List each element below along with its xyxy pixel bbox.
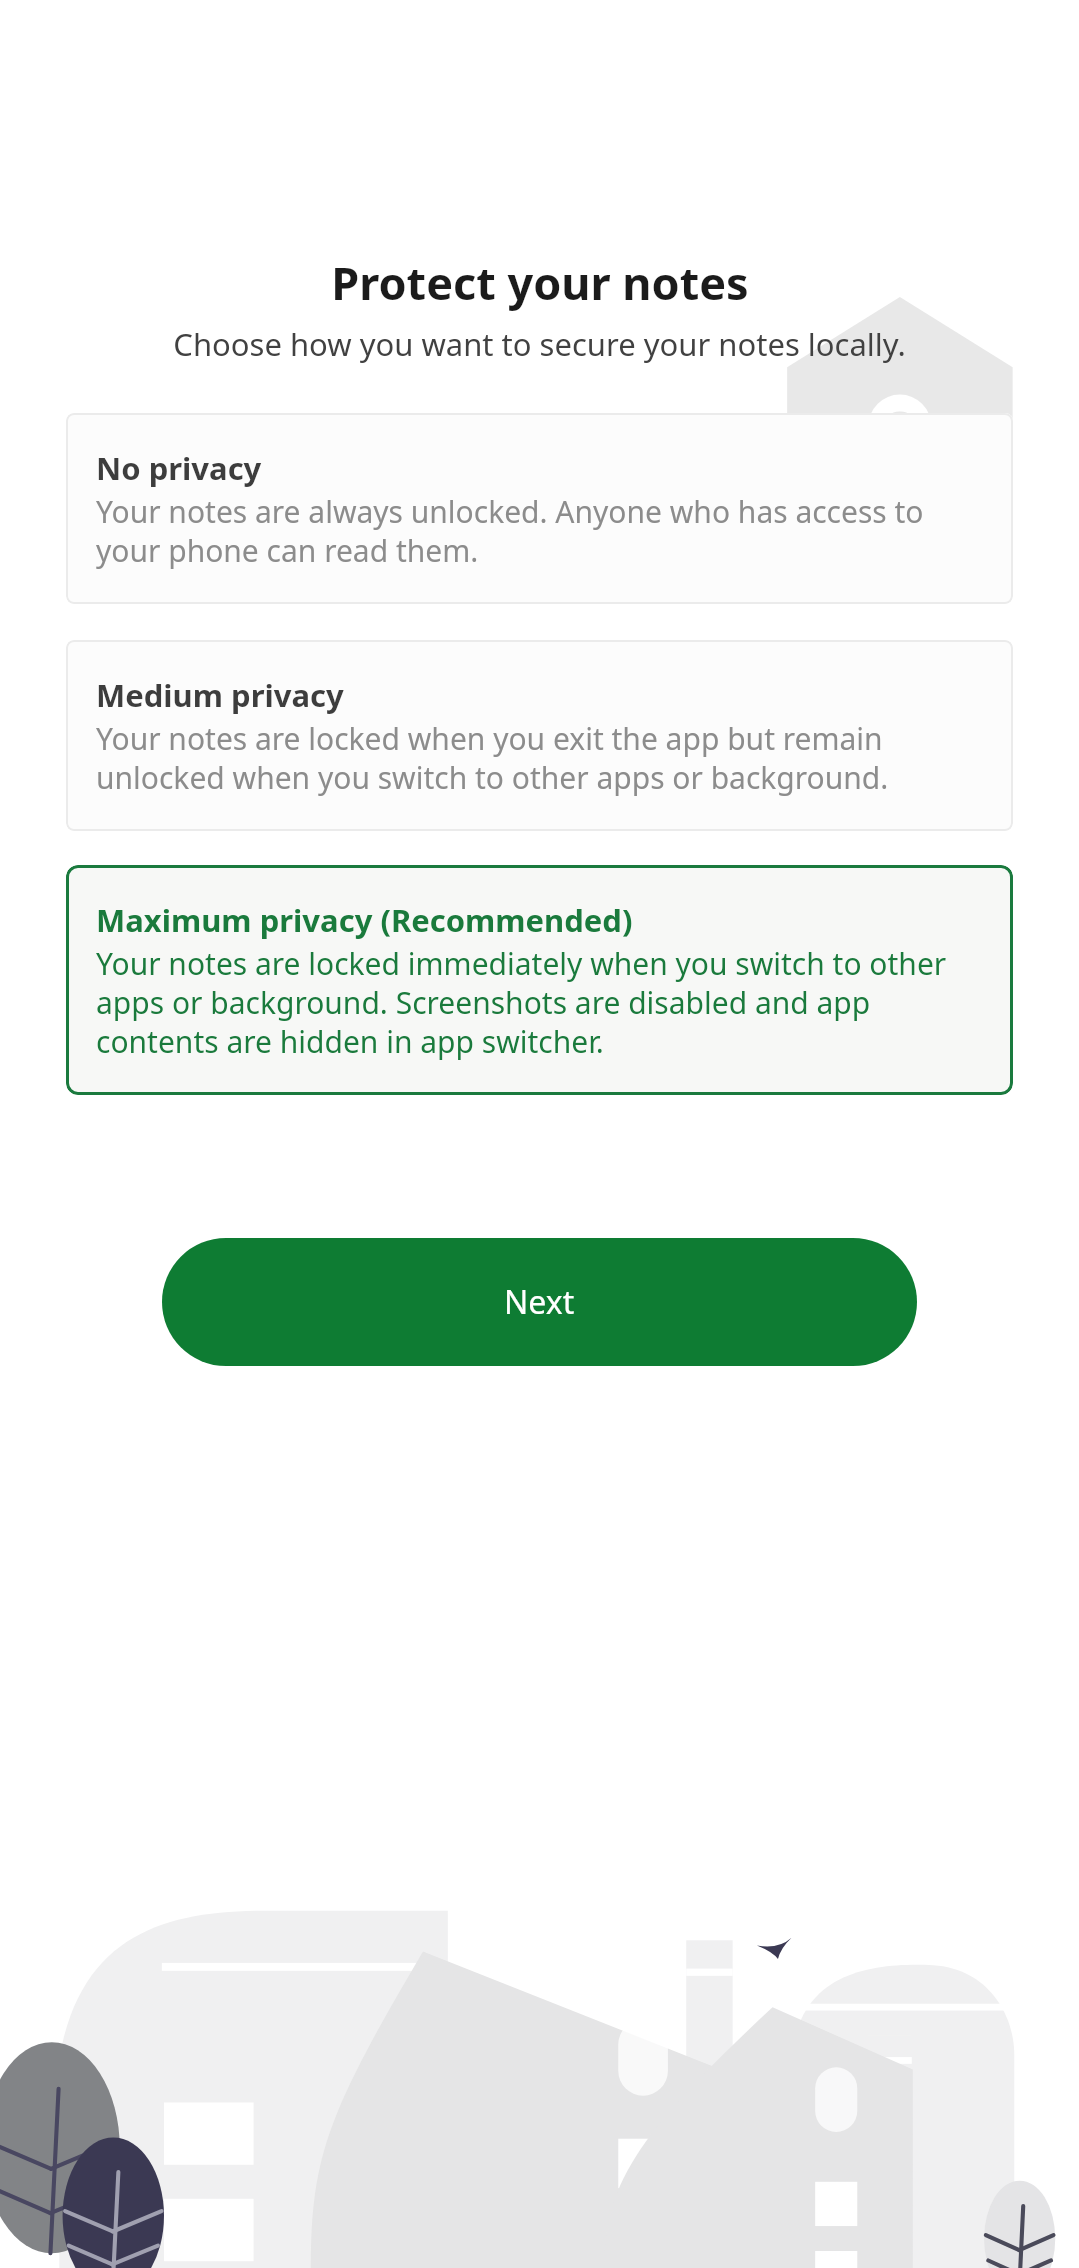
staticText: Maximum privacy (Recommended)	[96, 899, 633, 941]
staticText: Medium privacy	[96, 674, 344, 716]
staticText: Next	[504, 1280, 575, 1324]
button[interactable]: Next	[162, 1238, 917, 1366]
button[interactable]: Maximum privacy (Recommended)	[66, 865, 1013, 1095]
staticText: Your notes are locked immediately when y…	[96, 943, 983, 1061]
staticText: Protect your notes	[331, 252, 749, 313]
staticText: Choose how you want to secure your notes…	[40, 323, 1039, 365]
button[interactable]: No privacy	[66, 413, 1013, 604]
staticText: No privacy	[96, 447, 262, 489]
button[interactable]: Medium privacy	[66, 640, 1013, 831]
staticText: Your notes are locked when you exit the …	[96, 718, 983, 797]
staticText: Your notes are always unlocked. Anyone w…	[96, 491, 983, 570]
